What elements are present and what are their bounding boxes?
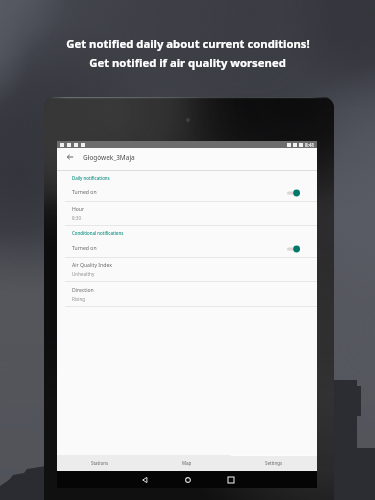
- staticText: Settings: [265, 460, 283, 466]
- staticText: Unhealthy: [72, 271, 95, 277]
- button[interactable]: Back: [61, 148, 79, 166]
- button[interactable]: Settings: [230, 455, 317, 471]
- button[interactable]: Recent apps: [209, 471, 252, 488]
- button[interactable]: Stations: [57, 455, 143, 471]
- button[interactable]: Turned on: [57, 240, 317, 257]
- staticText: 8:30: [72, 215, 82, 221]
- staticText: Daily notifications: [72, 175, 110, 181]
- staticText: Conditional notifications: [72, 230, 124, 236]
- staticText: Get notified daily about current conditi…: [66, 36, 310, 51]
- staticText: Air Quality Index: [72, 262, 112, 269]
- staticText: Stations: [91, 460, 109, 466]
- button[interactable]: Air Quality Index: [57, 258, 317, 281]
- button[interactable]: Turned on: [57, 184, 317, 201]
- button[interactable]: Direction: [57, 282, 317, 306]
- button[interactable]: Back: [123, 471, 166, 488]
- staticText: Map: [182, 460, 192, 466]
- button[interactable]: Map: [143, 455, 230, 471]
- staticText: Hour: [72, 206, 85, 213]
- staticText: Głogówek_3Maja: [83, 153, 135, 162]
- button[interactable]: Home: [166, 471, 209, 488]
- staticText: Get notified if air quality worsened: [89, 55, 286, 70]
- staticText: 8:41: [305, 142, 315, 148]
- staticText: Rising: [72, 296, 86, 302]
- staticText: Direction: [72, 287, 94, 294]
- staticText: Turned on: [72, 189, 287, 196]
- staticText: Turned on: [72, 245, 287, 252]
- button[interactable]: Hour: [57, 202, 317, 225]
